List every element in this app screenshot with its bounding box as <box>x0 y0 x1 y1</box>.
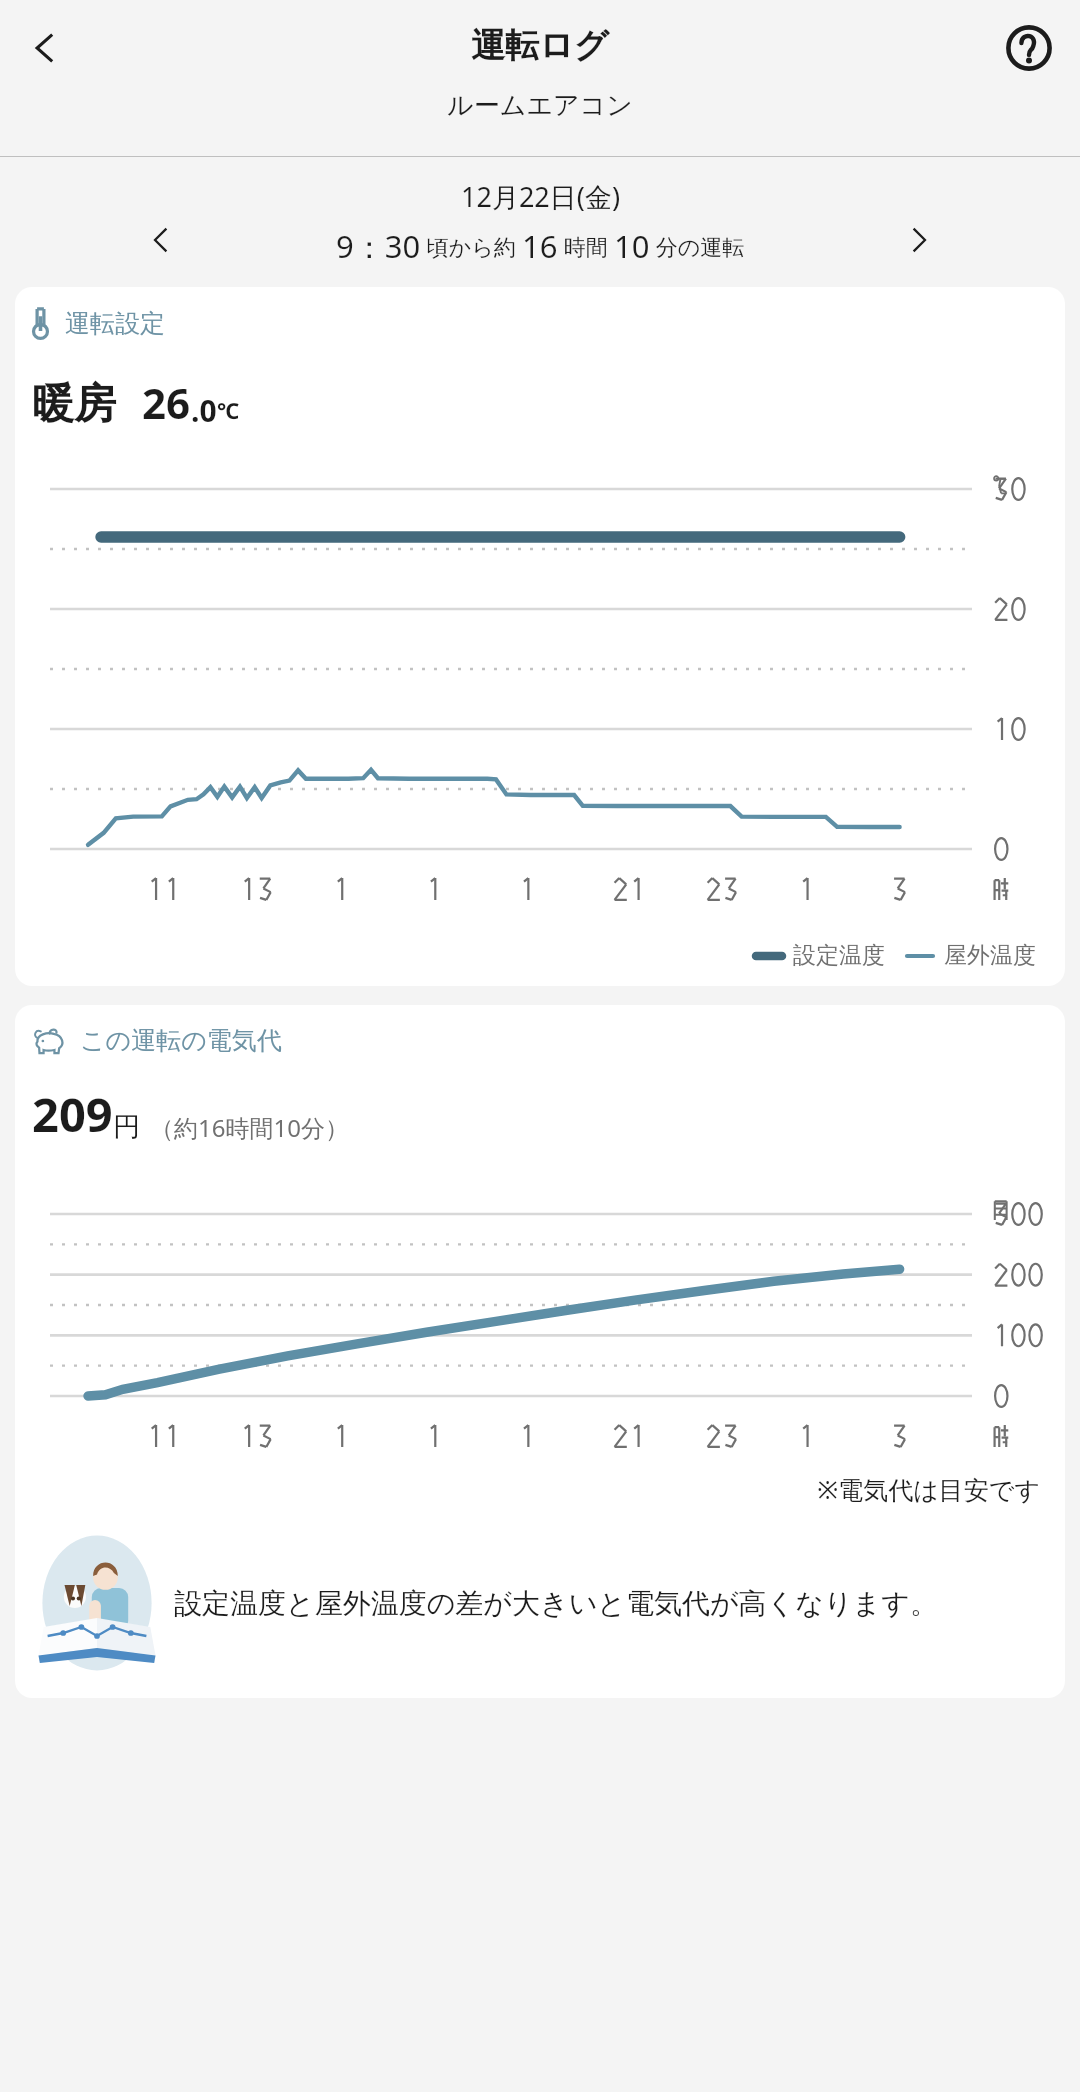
staticText: ルームエアコン <box>0 89 1080 122</box>
staticText: 12月22日(金) <box>461 178 620 215</box>
staticText: 209 <box>32 1082 113 1146</box>
staticText: この運転の電気代 <box>80 1025 282 1056</box>
staticText: 屋外温度 <box>944 941 1036 970</box>
button[interactable]: Previous day <box>130 209 192 271</box>
staticText: 頃から約 <box>421 231 522 261</box>
staticText: 26 <box>142 374 191 431</box>
staticText: 16 <box>522 225 558 267</box>
staticText: 運転設定 <box>65 308 165 339</box>
staticText: 設定温度 <box>793 941 885 970</box>
button[interactable]: Help <box>994 13 1064 83</box>
staticText: 9：30 <box>336 225 421 267</box>
staticText: 暖房 <box>32 378 116 431</box>
staticText: .0 <box>191 390 217 431</box>
staticText: ※電気代は目安です <box>32 1472 1040 1506</box>
staticText: （約16時間10分） <box>150 1111 349 1144</box>
button[interactable]: 運転設定 <box>15 287 1065 986</box>
staticText: 設定温度と屋外温度の差が大きいと電気代が高くなります。 <box>174 1586 938 1621</box>
staticText: ℃ <box>217 395 240 425</box>
button[interactable]: この運転の電気代 <box>15 1005 1065 1698</box>
button[interactable]: Next day <box>888 209 950 271</box>
staticText: 10 <box>614 225 650 267</box>
staticText: 分の運転 <box>650 231 745 261</box>
staticText: 円 <box>113 1110 140 1144</box>
staticText: 運転ログ <box>471 24 609 67</box>
staticText: 時間 <box>558 231 614 261</box>
button[interactable]: Back <box>12 15 78 81</box>
